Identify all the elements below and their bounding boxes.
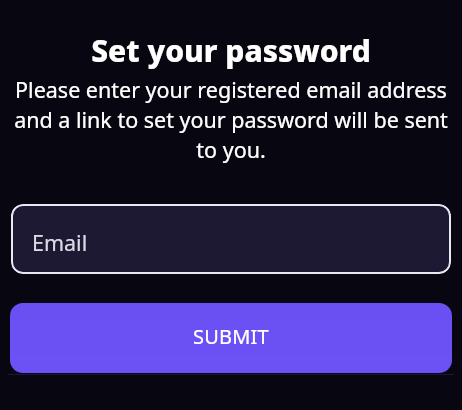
staticText: Please enter your registered email addre… — [0, 75, 462, 164]
button[interactable]: SUBMIT — [10, 303, 452, 373]
staticText: Email — [32, 228, 88, 257]
staticText: Set your password — [91, 30, 371, 71]
staticText: SUBMIT — [193, 323, 269, 350]
button[interactable]: Email — [11, 204, 451, 274]
